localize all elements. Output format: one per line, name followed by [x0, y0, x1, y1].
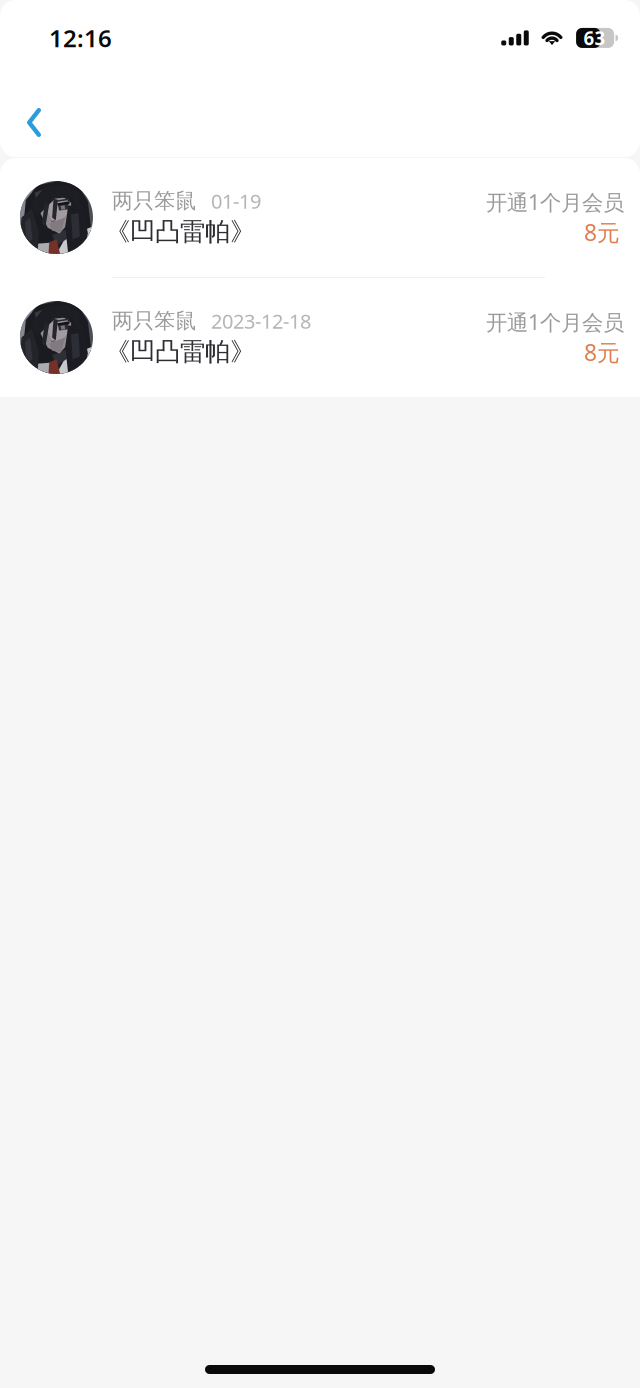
staticText: 12:16 — [49, 22, 112, 54]
staticText: 2023-12-18 — [211, 308, 311, 334]
staticText: 8元 — [584, 217, 620, 247]
staticText: 01-19 — [211, 188, 261, 214]
staticText: 63 — [584, 25, 606, 50]
staticText: 《凹凸雷帕》 — [105, 336, 255, 367]
staticText: 《凹凸雷帕》 — [105, 216, 255, 247]
button[interactable]: 两只笨鼠 — [0, 158, 640, 277]
button[interactable]: 两只笨鼠 — [0, 278, 640, 397]
staticText: 两只笨鼠 — [112, 188, 196, 214]
staticText: 开通1个月会员 — [486, 308, 624, 336]
staticText: 开通1个月会员 — [486, 188, 624, 216]
staticText: 两只笨鼠 — [112, 308, 196, 334]
button[interactable]: Back — [0, 89, 68, 156]
staticText: 8元 — [584, 337, 620, 367]
